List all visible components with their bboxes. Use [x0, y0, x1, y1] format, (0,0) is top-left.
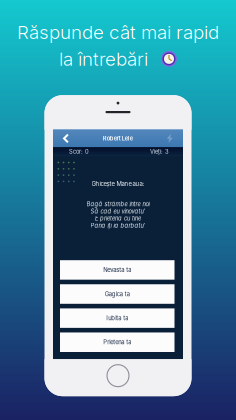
staticText: la întrebări	[59, 48, 148, 70]
button[interactable]: Prietena ta	[60, 332, 174, 352]
staticText: Până îți ia bărbatu'	[90, 222, 145, 229]
staticText: Să cad eu vinovatu'	[90, 208, 145, 215]
button[interactable]: Power up	[163, 130, 183, 147]
button[interactable]: Back	[53, 130, 72, 147]
button[interactable]: Nevasta ta	[60, 260, 174, 280]
staticText: Scor: 0	[69, 148, 89, 155]
staticText: Ghicește Maneaua:	[91, 180, 144, 187]
staticText: Gagica ta	[105, 290, 130, 298]
staticText: Robert Lele	[103, 135, 133, 142]
button[interactable]: Gagica ta	[60, 284, 174, 304]
staticText: Prietena ta	[103, 339, 131, 346]
staticText: E prietenă cu tine	[95, 215, 141, 222]
staticText: Bagă strâmbe între noi	[86, 201, 149, 208]
staticText: Vieți: 3	[150, 148, 169, 155]
staticText: Răspunde cât mai rapid	[17, 21, 219, 44]
staticText: Iubita ta	[106, 315, 128, 322]
staticText: Nevasta ta	[103, 266, 131, 273]
button[interactable]: Iubita ta	[60, 308, 174, 328]
